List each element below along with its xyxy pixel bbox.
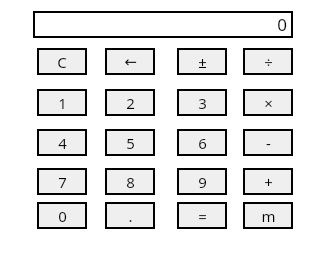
button[interactable]: Decimal point — [105, 202, 155, 229]
button[interactable]: Divide — [243, 48, 293, 75]
staticText: ÷ — [264, 52, 273, 72]
staticText: + — [264, 172, 273, 192]
button[interactable]: 8 — [105, 168, 155, 195]
button[interactable]: 7 — [37, 168, 87, 195]
button[interactable]: Plus minus sign — [177, 48, 227, 75]
button[interactable]: Multiply — [243, 89, 293, 116]
button[interactable]: 4 — [37, 129, 87, 156]
staticText: ± — [198, 52, 207, 72]
staticText: 6 — [198, 133, 207, 153]
staticText: 2 — [126, 93, 135, 113]
staticText: 0 — [277, 13, 287, 36]
button[interactable]: 6 — [177, 129, 227, 156]
button[interactable]: Plus — [243, 168, 293, 195]
button[interactable]: Minus — [243, 129, 293, 156]
staticText: m — [261, 206, 276, 226]
button[interactable]: 0 — [33, 11, 293, 38]
staticText: C — [57, 52, 67, 72]
button[interactable]: Backspace — [105, 48, 155, 75]
button[interactable]: C — [37, 48, 87, 75]
staticText: 8 — [126, 172, 135, 192]
button[interactable]: 9 — [177, 168, 227, 195]
staticText: 9 — [198, 172, 207, 192]
button[interactable]: 0 — [37, 202, 87, 229]
staticText: ← — [124, 53, 137, 70]
button[interactable]: 2 — [105, 89, 155, 116]
staticText: 7 — [58, 172, 67, 192]
staticText: . — [128, 206, 133, 226]
button[interactable]: 5 — [105, 129, 155, 156]
button[interactable]: 3 — [177, 89, 227, 116]
staticText: = — [198, 206, 207, 226]
staticText: 3 — [198, 93, 207, 113]
button[interactable]: Equals — [177, 202, 227, 229]
staticText: 0 — [58, 206, 67, 226]
button[interactable]: 1 — [37, 89, 87, 116]
staticText: × — [264, 93, 273, 113]
staticText: - — [266, 133, 271, 153]
staticText: 5 — [126, 133, 135, 153]
staticText: 1 — [58, 93, 67, 113]
button[interactable]: m — [243, 202, 293, 229]
staticText: 4 — [58, 133, 67, 153]
